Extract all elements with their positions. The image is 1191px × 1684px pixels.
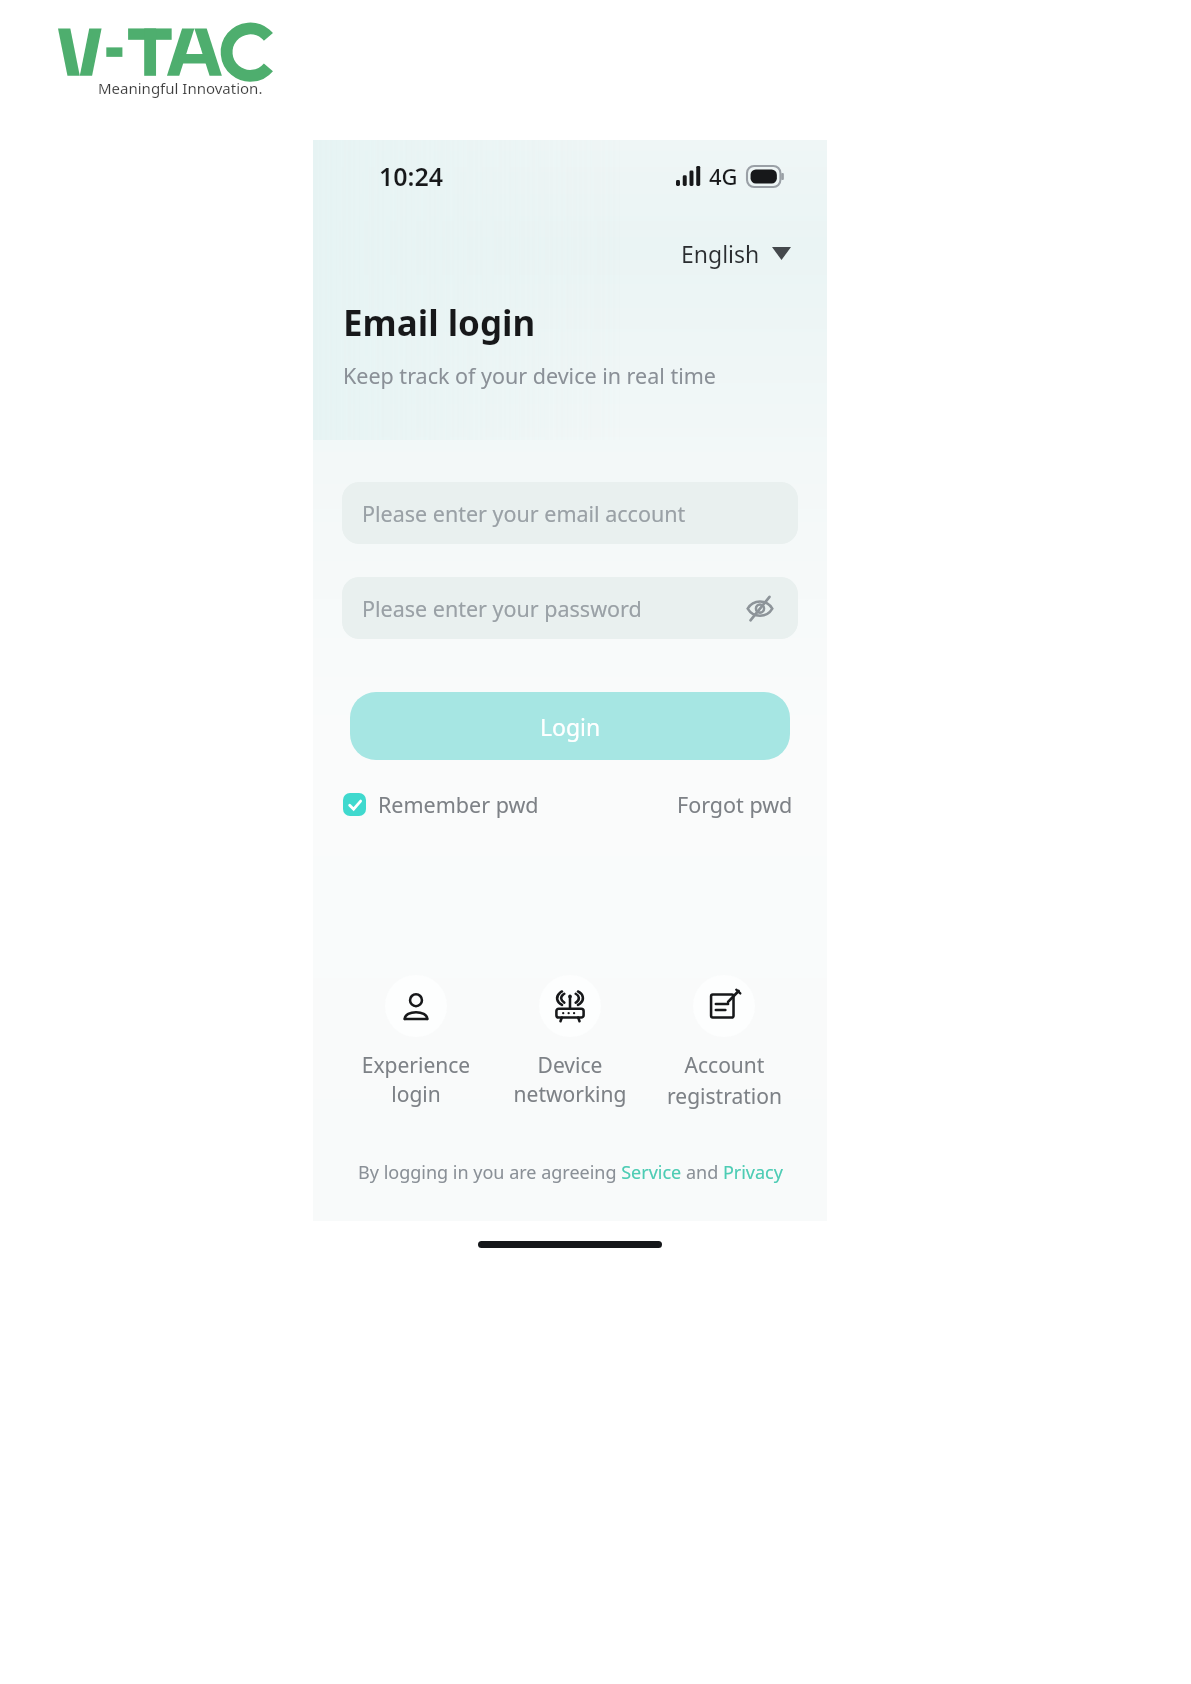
staticText: 10:24 bbox=[379, 159, 444, 193]
button[interactable]: Remember pwd bbox=[341, 786, 541, 823]
button[interactable]: Show password bbox=[738, 586, 782, 630]
button[interactable]: Forgot pwd bbox=[675, 786, 795, 823]
button[interactable]: Login bbox=[350, 692, 790, 760]
staticText: Account registration bbox=[667, 1051, 782, 1110]
button[interactable]: Please enter your password bbox=[342, 577, 798, 639]
staticText: 4G bbox=[709, 161, 738, 191]
staticText: Forgot pwd bbox=[677, 790, 793, 819]
staticText: Remember pwd bbox=[378, 790, 539, 819]
button[interactable]: Device networking bbox=[493, 971, 647, 1113]
staticText: Please enter your password bbox=[362, 594, 642, 623]
button[interactable]: Account registration bbox=[647, 971, 801, 1114]
staticText: By logging in you are agreeing Service a… bbox=[358, 1160, 783, 1185]
staticText: English bbox=[681, 238, 760, 269]
button[interactable]: Please enter your email account bbox=[342, 482, 798, 544]
staticText: Meaningful Innovation. bbox=[98, 78, 263, 98]
button[interactable]: English bbox=[677, 234, 795, 273]
staticText: Device networking bbox=[493, 1051, 647, 1109]
staticText: Keep track of your device in real time bbox=[343, 361, 716, 390]
staticText: Experience login bbox=[339, 1051, 493, 1109]
staticText: Please enter your email account bbox=[362, 499, 686, 528]
staticText: Email login bbox=[343, 299, 536, 347]
button[interactable]: Experience login bbox=[339, 971, 493, 1113]
staticText: Login bbox=[540, 711, 601, 742]
